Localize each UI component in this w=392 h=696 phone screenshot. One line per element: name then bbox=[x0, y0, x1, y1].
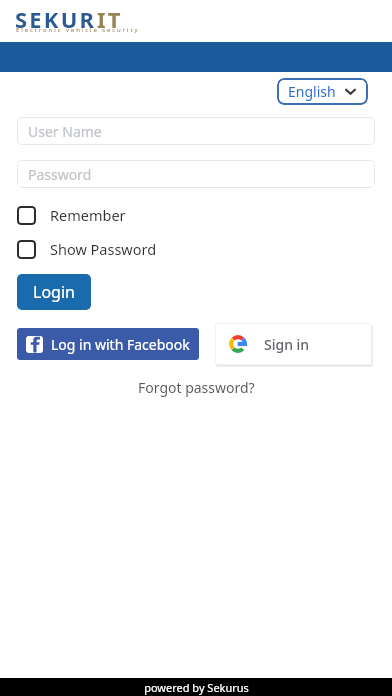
staticText: Remember bbox=[50, 205, 126, 225]
button[interactable]: Log in with Facebook bbox=[17, 328, 199, 360]
button[interactable]: Show Password bbox=[17, 236, 167, 262]
staticText: Show Password bbox=[50, 239, 157, 259]
button[interactable]: Remember bbox=[17, 202, 136, 228]
staticText: IT bbox=[97, 4, 123, 34]
staticText: Electronic vehicle security bbox=[16, 26, 140, 34]
staticText: English bbox=[288, 82, 336, 101]
button[interactable]: User Name bbox=[17, 117, 375, 145]
button[interactable]: Google bbox=[215, 323, 372, 365]
button[interactable]: English bbox=[277, 78, 368, 105]
staticText: powered by Sekurus bbox=[144, 680, 249, 695]
staticText: Sign in bbox=[264, 335, 310, 354]
staticText: Log in with Facebook bbox=[51, 335, 190, 354]
staticText: Password bbox=[28, 165, 92, 184]
button[interactable]: Password bbox=[17, 160, 375, 188]
button[interactable]: Login bbox=[17, 274, 91, 310]
staticText: SEKUR bbox=[15, 4, 97, 34]
button[interactable]: Forgot password? bbox=[130, 375, 263, 400]
staticText: Login bbox=[33, 281, 75, 303]
staticText: User Name bbox=[28, 122, 102, 141]
staticText: Forgot password? bbox=[138, 378, 255, 397]
other: Google bbox=[229, 335, 247, 353]
